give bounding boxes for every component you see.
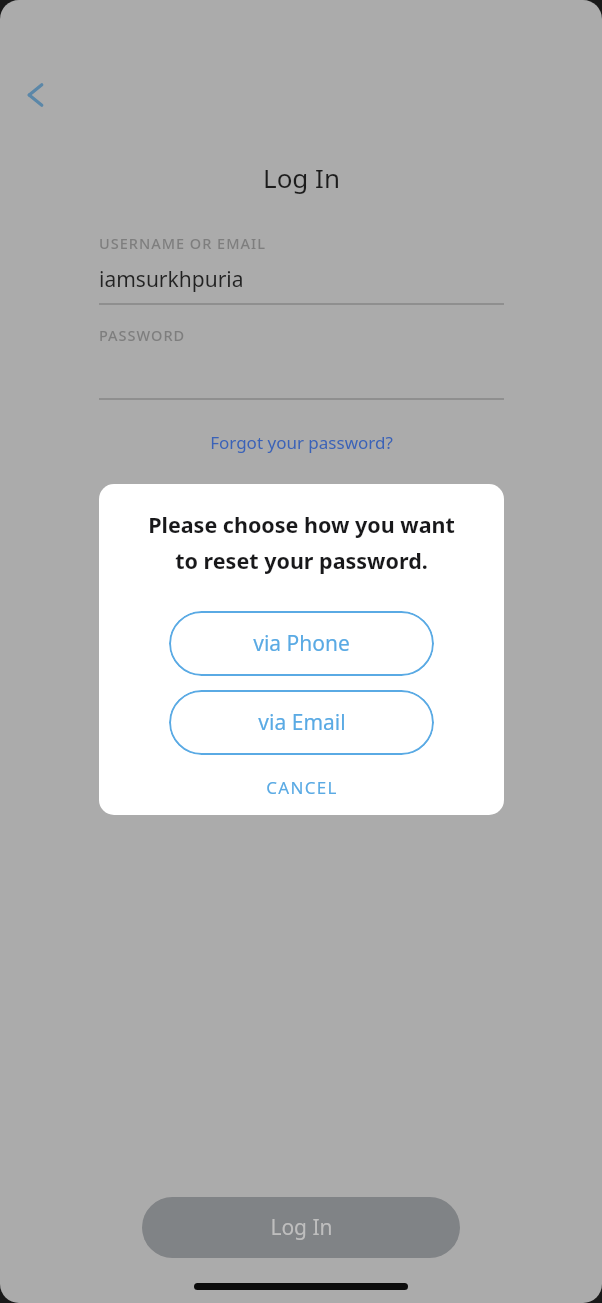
staticText: USERNAME OR EMAIL — [99, 233, 266, 253]
staticText: Log In — [263, 160, 340, 195]
staticText: Forgot your password? — [210, 431, 393, 454]
button[interactable]: via Email — [169, 690, 434, 755]
staticText: via Phone — [253, 629, 350, 658]
button[interactable]: via Phone — [169, 611, 434, 676]
button[interactable]: Forgot your password? — [0, 426, 602, 458]
button[interactable]: CANCEL — [169, 767, 434, 807]
button[interactable]: Log In — [142, 1197, 460, 1258]
staticText: iamsurkhpuria — [99, 265, 244, 294]
button[interactable]: Back — [8, 66, 66, 124]
staticText: Log In — [270, 1213, 333, 1242]
staticText: CANCEL — [266, 776, 338, 799]
staticText: PASSWORD — [99, 325, 186, 345]
staticText: Please choose how you want to reset your… — [148, 510, 455, 576]
staticText: via Email — [258, 708, 346, 737]
